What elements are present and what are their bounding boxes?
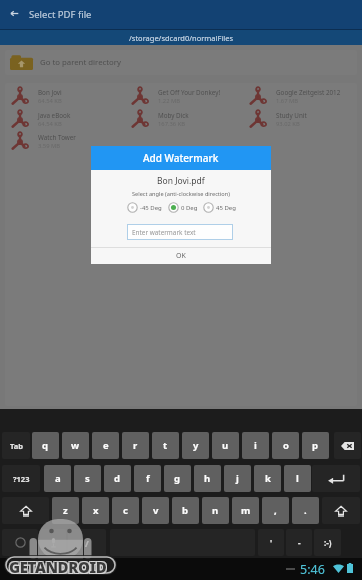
button[interactable]: t	[152, 432, 179, 459]
staticText: s	[85, 472, 90, 485]
button[interactable]: Go to parent directory	[5, 50, 357, 75]
button[interactable]: Shift	[2, 497, 49, 524]
staticText: Moby Dick	[158, 111, 189, 120]
staticText: GETANDROID	[10, 558, 108, 578]
staticText: k	[265, 472, 271, 485]
button[interactable]: o	[272, 432, 299, 459]
button[interactable]: Emoji	[2, 529, 38, 556]
staticText: z	[63, 504, 68, 517]
staticText: w	[71, 439, 80, 452]
button[interactable]: n	[202, 497, 229, 524]
button[interactable]: .	[292, 497, 319, 524]
button[interactable]: c	[112, 497, 139, 524]
button[interactable]: a	[44, 465, 71, 492]
staticText: Select PDF file	[29, 8, 92, 21]
button[interactable]: d	[104, 465, 131, 492]
staticText: o	[283, 439, 289, 452]
staticText: u	[222, 439, 229, 452]
staticText: y	[193, 439, 199, 452]
button[interactable]: f	[134, 465, 161, 492]
button[interactable]: j	[224, 465, 251, 492]
button[interactable]: Microphone	[40, 529, 66, 556]
staticText: r	[133, 439, 138, 452]
button[interactable]: 45 Deg	[203, 202, 236, 213]
button[interactable]: ,	[262, 497, 289, 524]
staticText: .	[304, 504, 307, 517]
button[interactable]: Moby Dick	[131, 110, 243, 129]
staticText: Get Off Your Donkey!	[158, 88, 221, 97]
staticText: e	[103, 439, 109, 452]
button[interactable]: Shift	[322, 497, 360, 524]
staticText: v	[153, 504, 159, 517]
staticText: 167.36 KB	[158, 120, 185, 128]
button[interactable]: x	[82, 497, 109, 524]
staticText: p	[312, 439, 319, 452]
button[interactable]: '	[258, 529, 284, 556]
button[interactable]: q	[32, 432, 59, 459]
staticText: 64.54 KB	[38, 120, 62, 128]
button[interactable]: -	[286, 529, 312, 556]
button[interactable]: e	[92, 432, 119, 459]
staticText: x	[93, 504, 99, 517]
staticText: Enter watermark text	[132, 228, 196, 237]
button[interactable]: Java eBook	[11, 110, 123, 129]
staticText: ,	[274, 504, 277, 517]
button[interactable]: z	[52, 497, 79, 524]
staticText: f	[146, 472, 150, 485]
button[interactable]: Enter	[312, 465, 360, 492]
button[interactable]: OK	[91, 248, 271, 264]
staticText: '	[270, 537, 273, 548]
button[interactable]: :-)	[314, 529, 341, 556]
staticText: c	[123, 504, 128, 517]
button[interactable]: Get Off Your Donkey!	[131, 87, 243, 106]
staticText: q	[42, 439, 49, 452]
button[interactable]: p	[302, 432, 329, 459]
button[interactable]: m	[232, 497, 259, 524]
button[interactable]: h	[194, 465, 221, 492]
button[interactable]: ?123	[2, 465, 40, 492]
button[interactable]: r	[122, 432, 149, 459]
button[interactable]	[0, 0, 362, 29]
button[interactable]: k	[254, 465, 281, 492]
button[interactable]: l	[284, 465, 311, 492]
staticText: GETANDROID	[8, 558, 106, 578]
staticText: Google Zeitgeist 2012	[276, 88, 341, 97]
staticText: 3.59 MB	[38, 142, 61, 150]
staticText: Select angle (anti-clockwise direction)	[132, 190, 230, 198]
button[interactable]: Enter watermark text	[127, 224, 233, 240]
button[interactable]: g	[164, 465, 191, 492]
staticText: Bon Jovi	[38, 88, 62, 97]
staticText: 5:46	[300, 561, 325, 578]
button[interactable]: v	[142, 497, 169, 524]
staticText: g	[174, 472, 181, 485]
staticText: Study Unit	[276, 111, 307, 120]
staticText: -45 Deg	[140, 204, 162, 212]
staticText: t	[163, 439, 168, 452]
staticText: d	[114, 472, 121, 485]
button[interactable]: Watch Tower	[11, 132, 123, 151]
button[interactable]: w	[62, 432, 89, 459]
button[interactable]: Add Watermark	[91, 146, 271, 170]
staticText: 45 Deg	[216, 204, 236, 212]
staticText: 64.54 KB	[38, 97, 62, 105]
button[interactable]: Backspace	[334, 432, 361, 459]
staticText: Java eBook	[38, 111, 71, 120]
button[interactable]: /	[68, 529, 106, 556]
button[interactable]: s	[74, 465, 101, 492]
button[interactable]: b	[172, 497, 199, 524]
button[interactable]: i	[242, 432, 269, 459]
staticText: :-)	[324, 537, 332, 548]
button[interactable]: Google Zeitgeist 2012	[249, 87, 361, 106]
staticText: 1.22 MB	[158, 97, 181, 105]
button[interactable]: Study Unit	[249, 110, 361, 129]
button[interactable]: 0 Deg	[168, 202, 198, 213]
other: Back	[10, 9, 19, 18]
staticText: GETANDROID	[9, 557, 107, 577]
button[interactable]: Tab	[2, 432, 30, 459]
button[interactable]: u	[212, 432, 239, 459]
staticText: OK	[176, 251, 186, 261]
button[interactable]: -45 Deg	[127, 202, 162, 213]
button[interactable]: Bon Jovi	[11, 87, 123, 106]
button[interactable]: y	[182, 432, 209, 459]
